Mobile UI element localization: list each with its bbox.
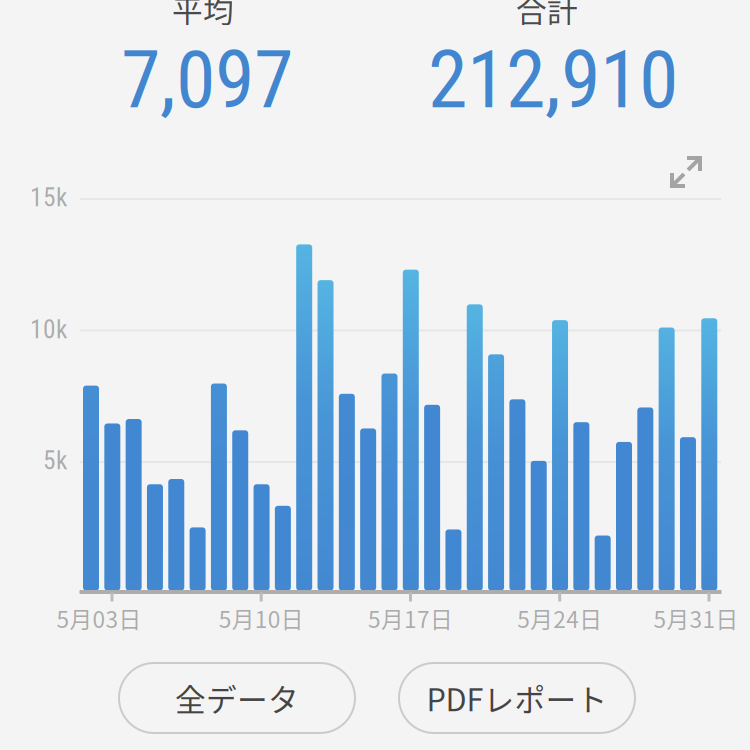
button[interactable]: 全データ bbox=[119, 663, 355, 733]
button[interactable]: PDFレポート bbox=[399, 663, 635, 733]
staticText: 5月24日 bbox=[517, 602, 602, 634]
staticText: 5月17日 bbox=[368, 602, 453, 634]
staticText: PDFレポート bbox=[426, 676, 607, 720]
staticText: 7,097 bbox=[121, 33, 293, 127]
staticText: 15k bbox=[30, 183, 67, 213]
staticText: 10k bbox=[30, 315, 67, 344]
staticText: 全データ bbox=[175, 676, 299, 720]
staticText: 5k bbox=[43, 446, 67, 476]
staticText: 212,910 bbox=[428, 33, 678, 127]
button[interactable]: Expand chart bbox=[664, 150, 708, 194]
staticText: 5月10日 bbox=[219, 602, 304, 634]
staticText: 5月31日 bbox=[653, 602, 738, 634]
staticText: 平均 bbox=[172, 0, 234, 31]
staticText: 合計 bbox=[516, 0, 578, 31]
staticText: 5月03日 bbox=[56, 602, 141, 634]
